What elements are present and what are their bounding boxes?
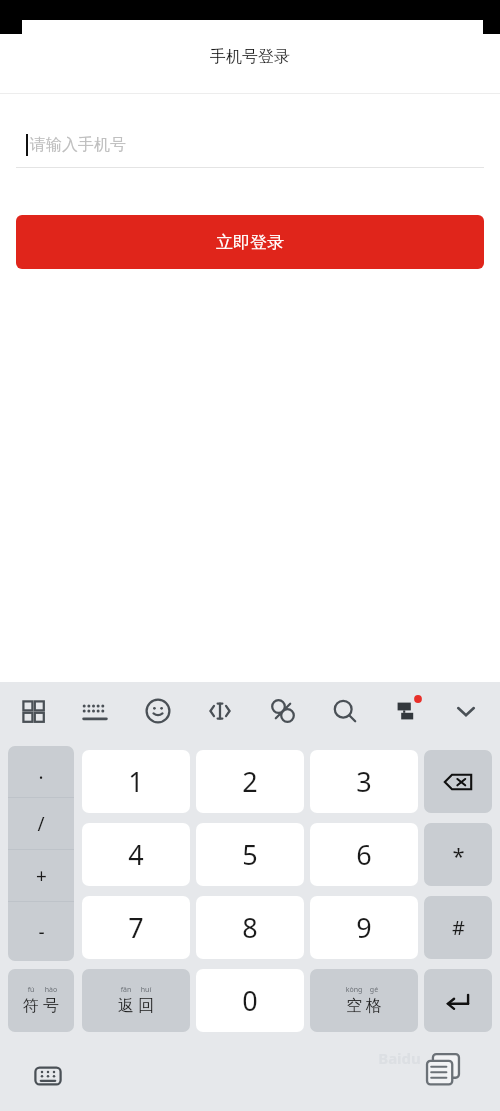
button[interactable]: - <box>8 902 74 961</box>
button[interactable]: 请输入手机号 <box>0 122 500 167</box>
button[interactable]: 3 <box>310 750 418 813</box>
staticText: # <box>452 914 465 941</box>
staticText: - <box>38 919 45 945</box>
button[interactable]: 4 <box>82 823 190 886</box>
button[interactable]: Settings <box>382 687 430 735</box>
button[interactable]: * <box>424 823 492 886</box>
staticText: 号 <box>41 996 61 1016</box>
staticText: 空 <box>344 996 364 1016</box>
staticText: 符 <box>21 996 41 1016</box>
staticText: kòng <box>344 985 364 995</box>
button[interactable]: Backspace <box>424 750 492 813</box>
staticText: . <box>38 759 44 785</box>
button[interactable]: fú <box>8 969 74 1032</box>
button[interactable]: kòng <box>310 969 418 1032</box>
staticText: 手机号登录 <box>210 47 290 67</box>
staticText: Baidu <box>378 1048 421 1068</box>
button[interactable]: 8 <box>196 896 304 959</box>
button[interactable]: 0 <box>196 969 304 1032</box>
staticText: 格 <box>364 996 384 1016</box>
staticText: / <box>37 811 45 837</box>
staticText: 回 <box>136 996 156 1016</box>
staticText: 请输入手机号 <box>30 135 126 155</box>
button[interactable]: 1 <box>82 750 190 813</box>
staticText: 3 <box>356 763 372 800</box>
staticText: gé <box>364 985 384 995</box>
staticText: + <box>36 863 47 889</box>
button[interactable]: / <box>8 798 74 849</box>
button[interactable]: . <box>8 746 74 797</box>
staticText: 8 <box>242 909 258 946</box>
button[interactable]: # <box>424 896 492 959</box>
button[interactable]: 6 <box>310 823 418 886</box>
button[interactable]: fǎn <box>82 969 190 1032</box>
staticText: 5 <box>242 836 258 873</box>
staticText: 7 <box>128 909 144 946</box>
staticText: 2 <box>242 763 258 800</box>
staticText: 0 <box>242 982 258 1019</box>
staticText: 返 <box>116 996 136 1016</box>
staticText: * <box>452 840 465 870</box>
staticText: 立即登录 <box>216 232 284 253</box>
button[interactable]: Enter <box>424 969 492 1032</box>
button[interactable]: 7 <box>82 896 190 959</box>
button[interactable]: 立即登录 <box>16 215 484 269</box>
staticText: fú <box>21 985 41 995</box>
button[interactable]: Hide keyboard <box>442 687 490 735</box>
button[interactable]: Search <box>321 687 369 735</box>
button[interactable]: Keyboard <box>71 687 119 735</box>
button[interactable]: 2 <box>196 750 304 813</box>
button[interactable]: Text cursor <box>196 687 244 735</box>
staticText: 1 <box>128 763 144 800</box>
staticText: huí <box>136 985 156 995</box>
staticText: hào <box>41 985 61 995</box>
staticText: fǎn <box>116 985 136 995</box>
button[interactable]: Switch keyboard <box>26 1054 70 1098</box>
button[interactable]: Clipboard <box>259 687 307 735</box>
staticText: 4 <box>128 836 144 873</box>
button[interactable]: Emoji <box>134 687 182 735</box>
staticText: 9 <box>356 909 372 946</box>
button[interactable]: + <box>8 850 74 901</box>
staticText: 6 <box>356 836 372 873</box>
button[interactable]: 9 <box>310 896 418 959</box>
button[interactable]: 5 <box>196 823 304 886</box>
button[interactable]: Panel <box>9 687 57 735</box>
